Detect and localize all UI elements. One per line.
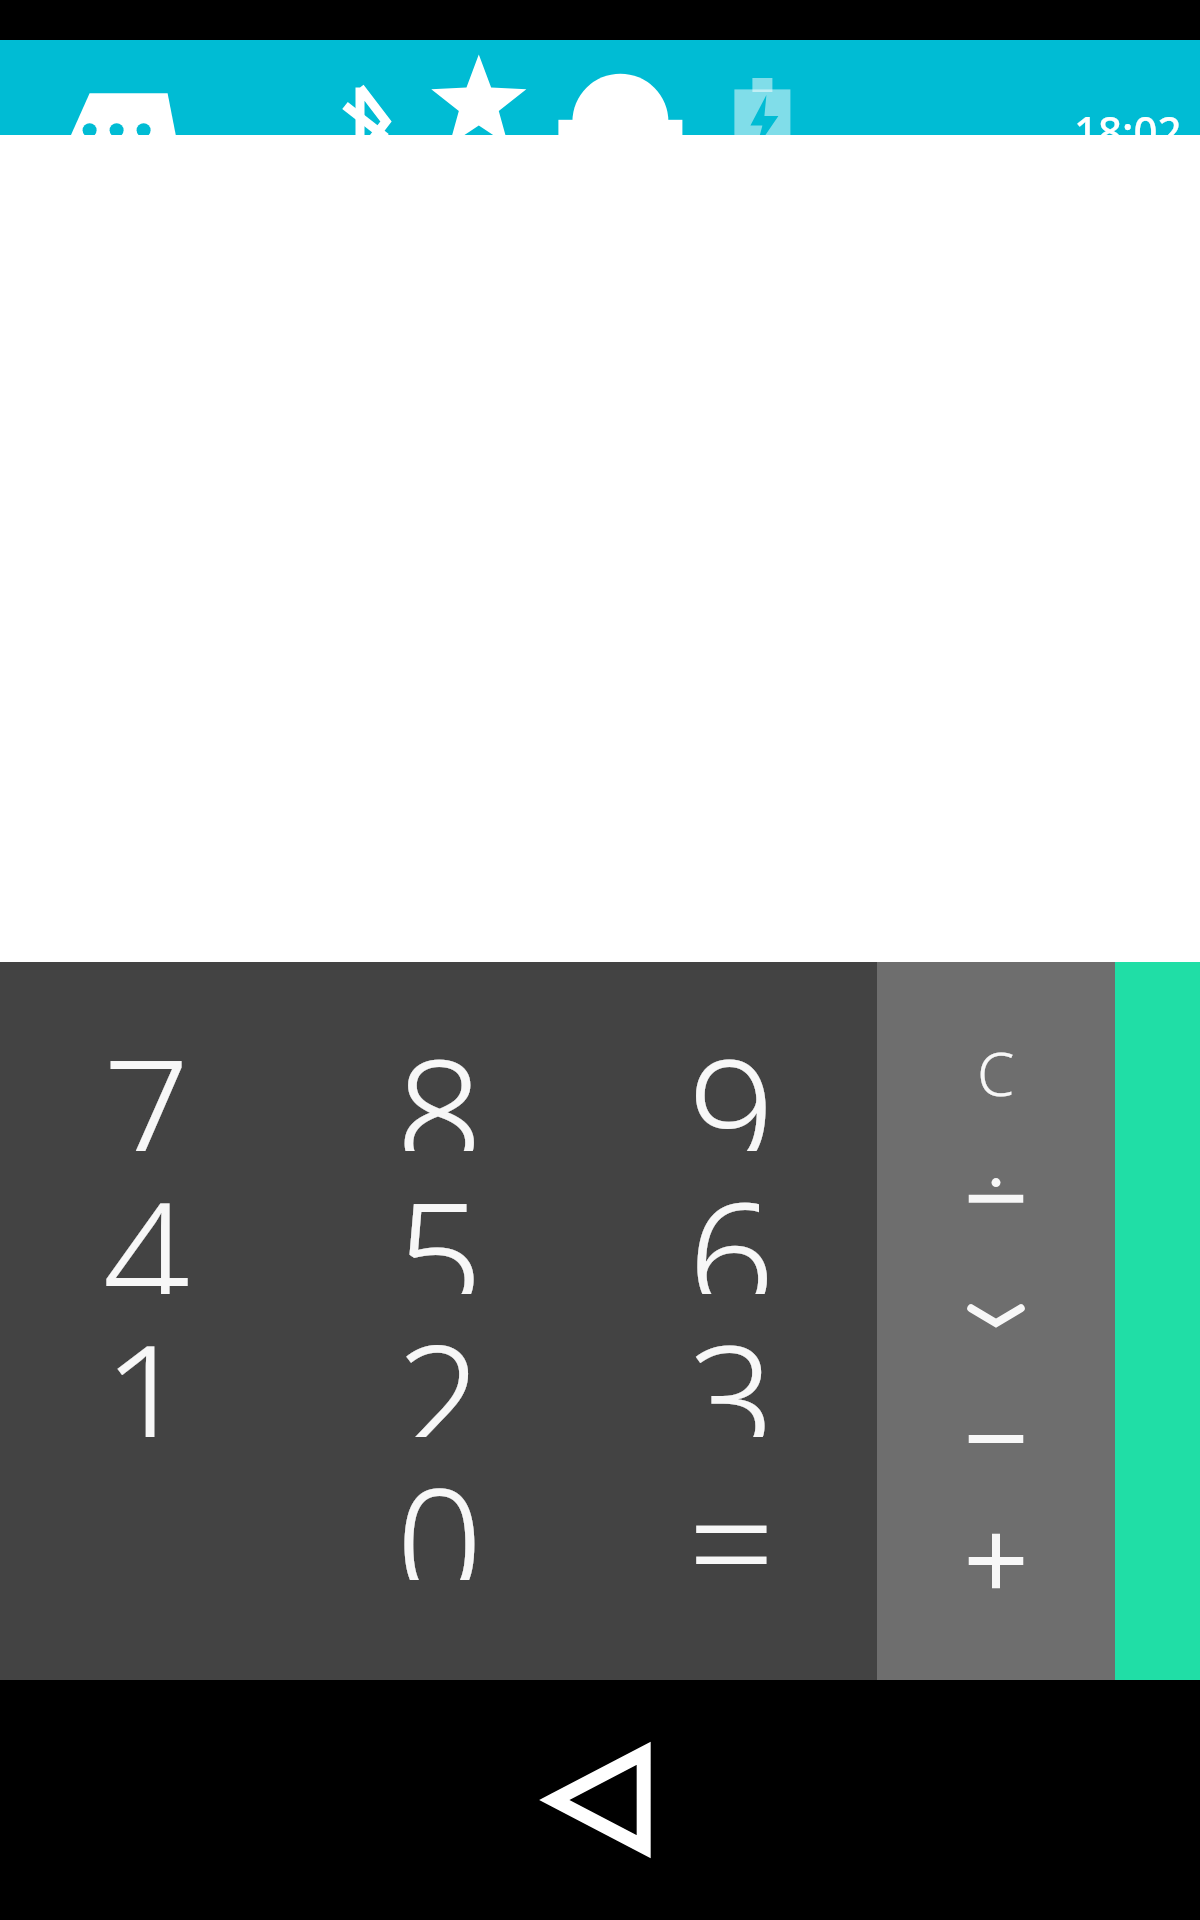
button[interactable]: Plus	[877, 1500, 1115, 1622]
button[interactable]: =	[585, 1437, 877, 1580]
staticText: =	[688, 1437, 775, 1580]
button[interactable]: Clear	[877, 1012, 1115, 1134]
button[interactable]: 3	[585, 1294, 877, 1437]
button[interactable]: 9	[585, 1008, 877, 1151]
staticText: C	[977, 1032, 1015, 1114]
button[interactable]: 0	[293, 1437, 585, 1580]
staticText: 4	[103, 1151, 190, 1294]
button[interactable]: 5	[293, 1151, 585, 1294]
staticText: 2	[396, 1294, 483, 1437]
staticText: 3	[688, 1294, 775, 1437]
button[interactable]: Minus	[877, 1378, 1115, 1500]
staticText: 6	[688, 1151, 775, 1294]
staticText: 7	[103, 1008, 190, 1151]
staticText: 18:02	[1074, 102, 1182, 159]
staticText: 9	[688, 1008, 775, 1151]
staticText: 5	[396, 1151, 483, 1294]
button[interactable]: 1	[0, 1294, 293, 1437]
button[interactable]: 7	[0, 1008, 293, 1151]
staticText: 8	[396, 1008, 483, 1151]
button[interactable]: Back	[510, 1710, 690, 1890]
staticText: 1	[103, 1294, 190, 1437]
button[interactable]: 8	[293, 1008, 585, 1151]
button[interactable]: 4	[0, 1151, 293, 1294]
button[interactable]: 2	[293, 1294, 585, 1437]
button[interactable]: Multiply	[877, 1256, 1115, 1378]
staticText: 0	[396, 1437, 483, 1580]
button[interactable]: Divide	[877, 1134, 1115, 1256]
button[interactable]: 6	[585, 1151, 877, 1294]
